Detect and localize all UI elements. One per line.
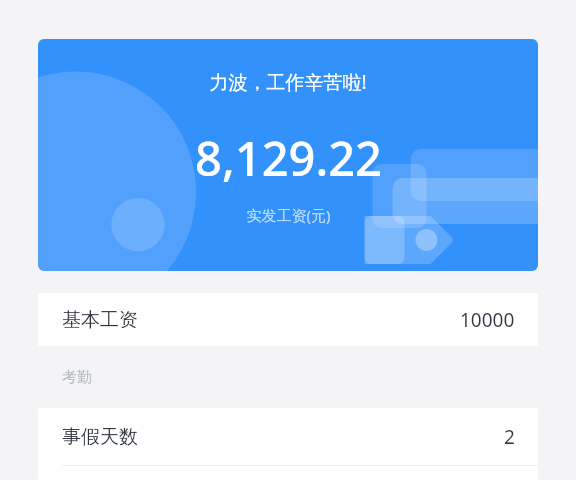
staticText: 基本工资 [62, 308, 138, 332]
button[interactable]: 事假天数 [38, 408, 538, 465]
staticText: 10000 [460, 307, 515, 333]
staticText: 力波，工作辛苦啦! [209, 69, 367, 95]
button[interactable]: 力波，工作辛苦啦! [38, 39, 538, 271]
staticText: 2 [504, 424, 515, 450]
button[interactable]: 基本工资 [38, 293, 538, 346]
staticText: 8,129.22 [195, 126, 382, 190]
staticText: 实发工资(元) [246, 205, 331, 225]
staticText: 事假天数 [62, 425, 138, 449]
staticText: 考勤 [62, 368, 92, 387]
